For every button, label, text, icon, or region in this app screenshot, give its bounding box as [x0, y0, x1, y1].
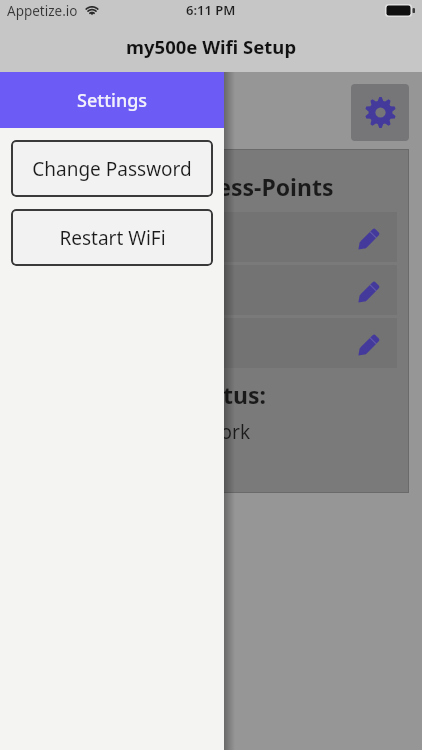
- staticText: Not in network: [117, 419, 251, 445]
- staticText: Change Password: [32, 156, 192, 182]
- button[interactable]: Settings: [0, 72, 224, 128]
- staticText: Restart WiFi: [59, 225, 166, 251]
- button[interactable]: Restart WiFi: [11, 209, 213, 266]
- staticText: my500e Wifi Setup: [126, 34, 297, 59]
- staticText: Settings: [77, 88, 148, 113]
- staticText: Appetize.io: [7, 2, 78, 20]
- staticText: WiFi Status:: [132, 379, 266, 410]
- button[interactable]: Settings: [351, 84, 409, 141]
- button[interactable]: Edit: [26, 318, 397, 368]
- staticText: 6:11 PM: [186, 1, 236, 19]
- button[interactable]: Edit: [351, 329, 385, 363]
- button[interactable]: Edit: [351, 223, 385, 257]
- staticText: WiFi Access-Points: [123, 171, 334, 202]
- button[interactable]: Edit: [26, 212, 397, 262]
- button[interactable]: Edit: [351, 276, 385, 310]
- button[interactable]: Edit: [26, 265, 397, 315]
- button[interactable]: Change Password: [11, 140, 213, 197]
